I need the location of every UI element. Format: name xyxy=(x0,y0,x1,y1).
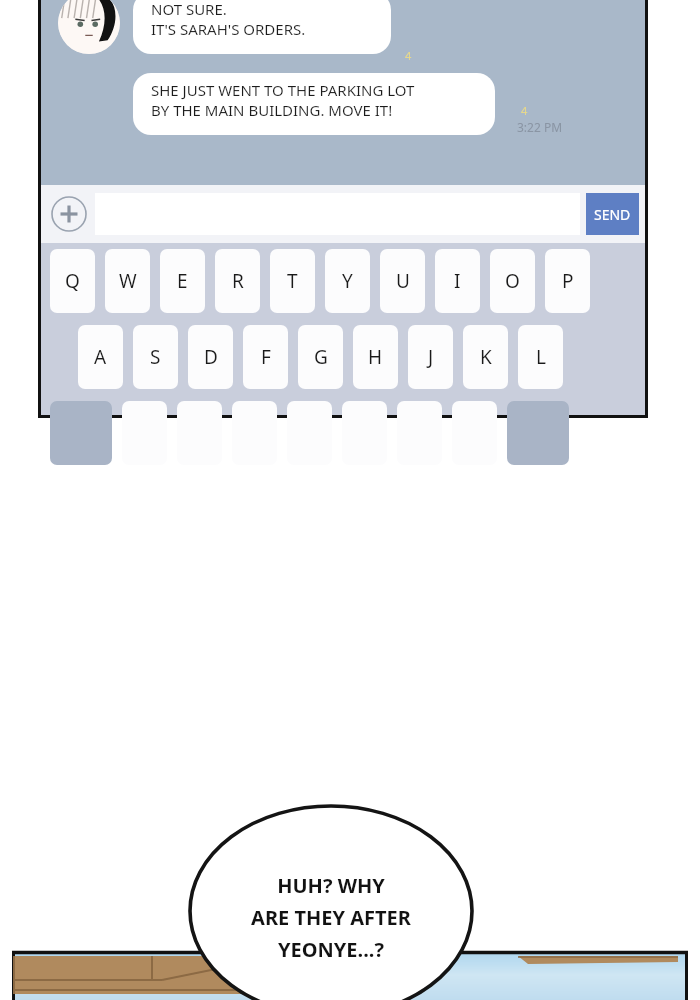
staticText: D xyxy=(204,344,218,370)
button[interactable]: Y xyxy=(325,249,370,313)
button[interactable]: E xyxy=(160,249,205,313)
staticText: Q xyxy=(65,268,80,294)
button[interactable]: Key xyxy=(232,401,277,465)
staticText: G xyxy=(314,344,328,370)
staticText: O xyxy=(505,268,520,294)
button[interactable]: J xyxy=(408,325,453,389)
button[interactable]: U xyxy=(380,249,425,313)
staticText: L xyxy=(536,344,546,370)
button[interactable]: W xyxy=(105,249,150,313)
button[interactable]: L xyxy=(518,325,563,389)
button[interactable]: Key xyxy=(452,401,497,465)
staticText: BY THE MAIN BUILDING. MOVE IT! xyxy=(151,100,393,120)
staticText: U xyxy=(396,268,410,294)
staticText: 4 xyxy=(521,103,528,118)
staticText: SHE JUST WENT TO THE PARKING LOT xyxy=(151,80,415,100)
button[interactable]: F xyxy=(243,325,288,389)
staticText: R xyxy=(232,268,244,294)
button[interactable]: Q xyxy=(50,249,95,313)
staticText: H xyxy=(368,344,383,370)
button[interactable]: Key xyxy=(342,401,387,465)
button[interactable]: A xyxy=(78,325,123,389)
staticText: 4 xyxy=(405,48,412,63)
button[interactable]: H xyxy=(353,325,398,389)
staticText: NOT SURE. xyxy=(151,0,227,19)
staticText: A xyxy=(94,344,107,370)
staticText: IT'S SARAH'S ORDERS. xyxy=(151,19,306,39)
button[interactable]: Shift xyxy=(50,401,112,465)
button[interactable]: T xyxy=(270,249,315,313)
button[interactable]: Profile picture xyxy=(58,0,120,54)
staticText: T xyxy=(287,268,298,294)
staticText: YEONYE...? xyxy=(278,936,384,963)
button[interactable]: Key xyxy=(122,401,167,465)
button[interactable]: Add attachment xyxy=(51,196,87,232)
button[interactable]: SEND xyxy=(586,193,639,235)
button[interactable]: P xyxy=(545,249,590,313)
staticText: P xyxy=(562,268,574,294)
button[interactable]: O xyxy=(490,249,535,313)
button[interactable]: D xyxy=(188,325,233,389)
staticText: HUH? WHY xyxy=(277,872,385,899)
staticText: 3:22 PM xyxy=(517,119,563,135)
staticText: Y xyxy=(342,268,353,294)
staticText: I xyxy=(454,268,461,294)
button[interactable]: R xyxy=(215,249,260,313)
staticText: K xyxy=(480,344,492,370)
button[interactable]: NOT SURE. xyxy=(133,0,391,54)
button[interactable]: Key xyxy=(177,401,222,465)
button[interactable]: K xyxy=(463,325,508,389)
staticText: E xyxy=(177,268,188,294)
button[interactable]: Key xyxy=(287,401,332,465)
staticText: SEND xyxy=(594,205,631,224)
button[interactable]: Backspace xyxy=(507,401,569,465)
staticText: W xyxy=(119,268,137,294)
button[interactable]: I xyxy=(435,249,480,313)
button[interactable]: SHE JUST WENT TO THE PARKING LOT xyxy=(133,73,495,135)
staticText: ARE THEY AFTER xyxy=(251,904,411,931)
staticText: F xyxy=(261,344,271,370)
staticText: J xyxy=(428,344,434,370)
button[interactable]: S xyxy=(133,325,178,389)
staticText: S xyxy=(150,344,161,370)
button[interactable]: Key xyxy=(397,401,442,465)
button[interactable]: G xyxy=(298,325,343,389)
